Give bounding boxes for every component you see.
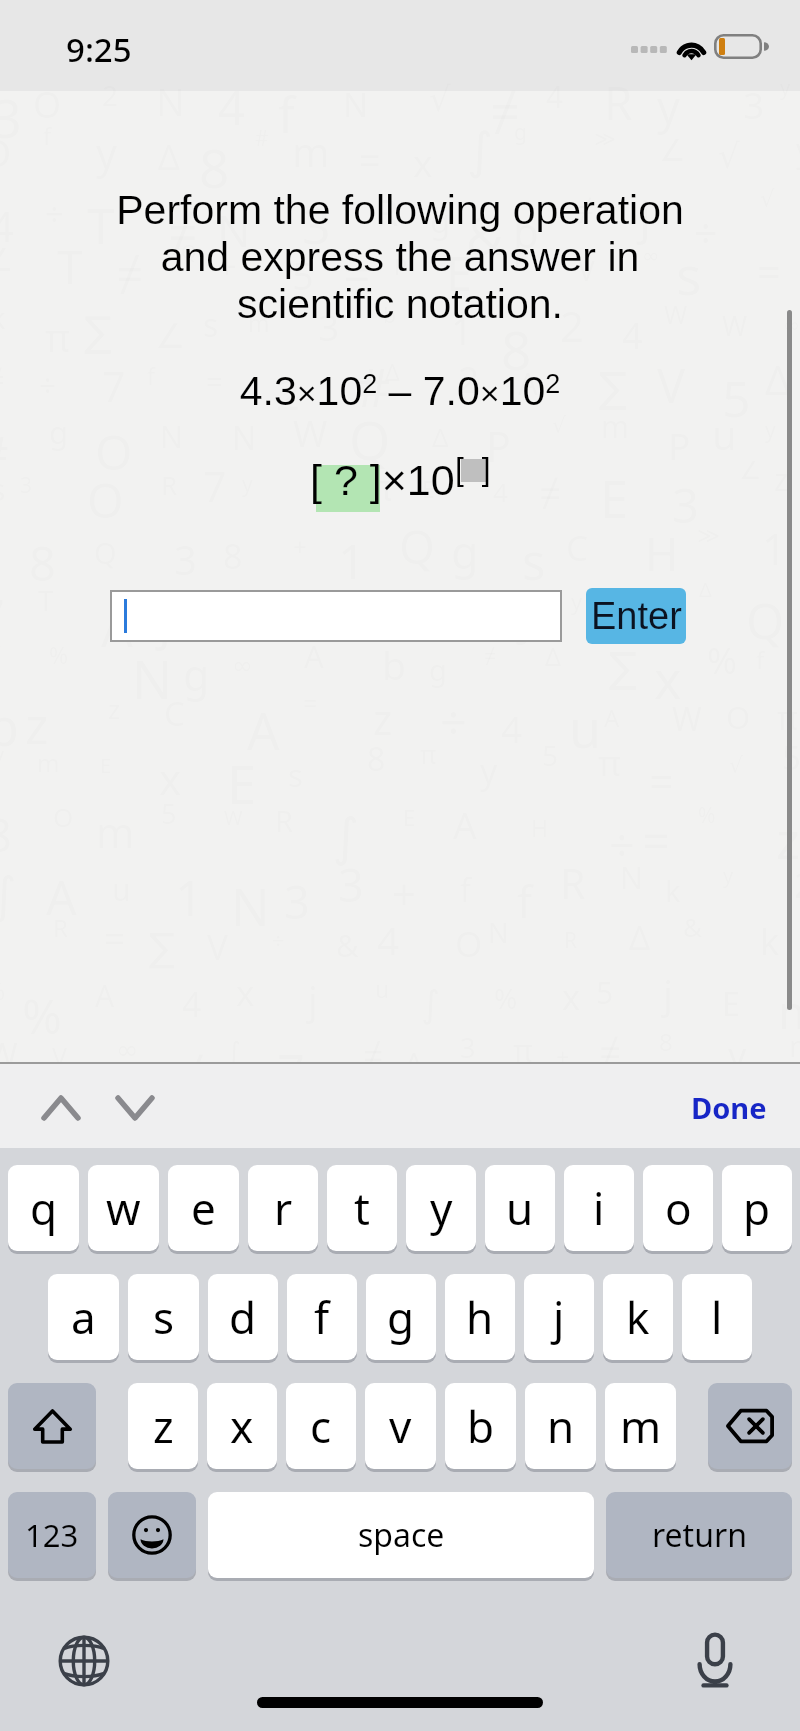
- button[interactable]: space: [208, 1492, 594, 1578]
- button[interactable]: j: [524, 1274, 594, 1360]
- staticText: R: [640, 593, 657, 628]
- button[interactable]: i: [564, 1165, 634, 1251]
- staticText: 5: [292, 249, 314, 301]
- button[interactable]: u: [485, 1165, 555, 1251]
- button[interactable]: k: [603, 1274, 673, 1360]
- staticText: s: [522, 528, 546, 595]
- button[interactable]: c: [286, 1383, 356, 1469]
- staticText: z: [153, 1396, 174, 1456]
- staticText: ≠: [577, 189, 595, 230]
- button[interactable]: t: [327, 1165, 397, 1251]
- button[interactable]: b: [445, 1383, 516, 1469]
- staticText: y: [657, 76, 680, 137]
- staticText: π: [369, 463, 393, 512]
- button[interactable]: h: [445, 1274, 515, 1360]
- staticText: P: [394, 251, 408, 281]
- staticText: ∑: [609, 643, 638, 692]
- staticText: f: [314, 1287, 330, 1347]
- button[interactable]: Previous field: [29, 1076, 93, 1140]
- button[interactable]: Return: [606, 1492, 792, 1578]
- button[interactable]: w: [88, 1165, 159, 1251]
- staticText: q: [30, 1178, 58, 1238]
- button[interactable]: Dictation: [683, 1628, 747, 1692]
- staticText: Q: [349, 403, 391, 475]
- staticText: t: [354, 1178, 370, 1238]
- button[interactable]: p: [722, 1165, 792, 1251]
- staticText: 3: [302, 191, 331, 259]
- button[interactable]: q: [8, 1165, 79, 1251]
- button[interactable]: Change keyboard: [52, 1629, 116, 1693]
- button[interactable]: Numbers: [8, 1492, 96, 1578]
- button[interactable]: Next field: [103, 1076, 167, 1140]
- staticText: p: [743, 1178, 771, 1238]
- button[interactable]: f: [287, 1274, 357, 1360]
- button[interactable]: x: [207, 1383, 277, 1469]
- staticText: %: [221, 594, 251, 642]
- staticText: 3: [0, 82, 22, 153]
- staticText: f: [139, 1081, 157, 1152]
- button[interactable]: l: [682, 1274, 752, 1360]
- button[interactable]: Answer field: [110, 590, 562, 642]
- staticText: g: [387, 1287, 415, 1347]
- staticText: +: [556, 1041, 570, 1072]
- button[interactable]: e: [168, 1165, 239, 1251]
- button[interactable]: d: [208, 1274, 278, 1360]
- button[interactable]: z: [128, 1383, 198, 1469]
- staticText: d: [229, 1287, 257, 1347]
- staticText: [ ]: [455, 451, 491, 487]
- button[interactable]: a: [48, 1274, 119, 1360]
- button[interactable]: m: [605, 1383, 676, 1469]
- staticText: h: [466, 1287, 494, 1347]
- button[interactable]: r: [248, 1165, 318, 1251]
- staticText: u: [506, 1178, 534, 1238]
- staticText: 8: [501, 313, 532, 385]
- staticText: b: [382, 638, 406, 691]
- button[interactable]: Emoji: [108, 1492, 196, 1578]
- button[interactable]: s: [128, 1274, 199, 1360]
- staticText: 3: [460, 1029, 476, 1066]
- button[interactable]: Done: [661, 1074, 800, 1141]
- button[interactable]: Backspace: [708, 1383, 792, 1469]
- staticText: n: [547, 1396, 575, 1456]
- button[interactable]: n: [525, 1383, 596, 1469]
- button[interactable]: y: [406, 1165, 476, 1251]
- button[interactable]: Enter: [586, 588, 686, 644]
- staticText: o: [665, 1178, 692, 1238]
- staticText: π: [513, 1030, 533, 1071]
- staticText: Δ: [404, 1042, 424, 1084]
- staticText: W: [0, 1032, 18, 1077]
- button[interactable]: v: [365, 1383, 436, 1469]
- staticText: A: [101, 594, 133, 662]
- button[interactable]: Shift: [8, 1383, 96, 1469]
- button[interactable]: g: [366, 1274, 436, 1360]
- button[interactable]: o: [643, 1165, 713, 1251]
